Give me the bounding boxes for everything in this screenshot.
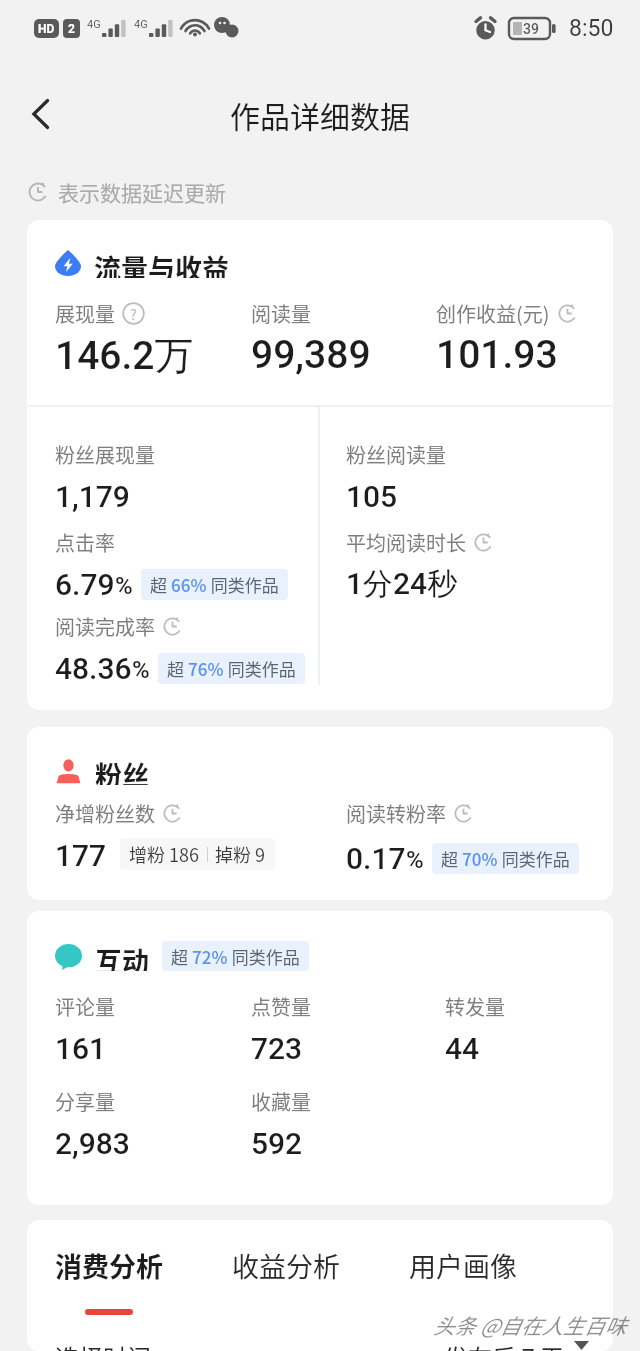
staticText: 点击率 <box>55 528 115 557</box>
staticText: 粉丝展现量 <box>55 440 155 469</box>
button[interactable]: 发布后 7 天 <box>444 1339 589 1351</box>
staticText: 表示数据延迟更新 <box>58 177 226 207</box>
staticText: 同类作品 <box>224 656 296 681</box>
staticText: 头条 @自在人生百味 <box>433 1310 626 1340</box>
staticText: 选择时间 <box>55 1339 151 1351</box>
staticText: 8:50 <box>569 15 614 42</box>
staticText: 超 <box>167 656 188 681</box>
staticText: 掉粉 9 <box>215 841 266 867</box>
staticText: 4G <box>87 18 101 31</box>
staticText: 39 <box>523 21 539 37</box>
button[interactable]: 收益分析 <box>232 1246 340 1285</box>
staticText: 阅读转粉率 <box>346 799 446 828</box>
staticText: 阅读完成率 <box>55 612 155 641</box>
staticText: 同类作品 <box>207 572 279 597</box>
staticText: 同类作品 <box>228 944 300 968</box>
staticText: 70% <box>462 846 498 871</box>
staticText: 收益分析 <box>232 1246 340 1285</box>
staticText: 平均阅读时长 <box>346 528 466 557</box>
staticText: % <box>406 846 424 874</box>
staticText: 超 <box>441 846 462 871</box>
button[interactable]: Back <box>12 85 70 143</box>
staticText: 转发量 <box>445 992 505 1021</box>
staticText: ? <box>130 303 137 324</box>
staticText: 2 <box>68 22 75 36</box>
staticText: 超 <box>150 572 171 597</box>
staticText: 592 <box>251 1126 303 1161</box>
staticText: 超 <box>171 944 192 968</box>
staticText: 105 <box>346 479 398 514</box>
button[interactable]: 用户画像 <box>409 1246 517 1285</box>
staticText: 76% <box>188 656 224 681</box>
staticText: % <box>132 656 150 684</box>
staticText: 4G <box>134 18 148 31</box>
staticText: HD <box>38 22 55 36</box>
staticText: 101.93 <box>436 332 558 378</box>
button[interactable]: 消费分析 <box>55 1246 163 1315</box>
staticText: 流量与收益 <box>94 248 229 278</box>
staticText: 作品详细数据 <box>230 93 410 136</box>
staticText: 评论量 <box>55 992 115 1021</box>
staticText: 互动 <box>95 941 149 971</box>
staticText: 2,983 <box>55 1126 130 1161</box>
staticText: 66% <box>171 572 207 597</box>
staticText: 1分24秒 <box>346 565 458 603</box>
staticText: 177 <box>55 838 107 873</box>
staticText: 1,179 <box>55 479 130 514</box>
staticText: 粉丝 <box>95 755 149 785</box>
staticText: 粉丝阅读量 <box>346 440 446 469</box>
staticText: 6.79 <box>55 567 115 602</box>
staticText: 44 <box>445 1031 480 1066</box>
staticText: 161 <box>55 1031 107 1066</box>
staticText: 99,389 <box>251 332 371 378</box>
staticText: 消费分析 <box>55 1246 163 1285</box>
staticText: 72% <box>192 944 228 968</box>
staticText: 增粉 186 <box>129 841 200 867</box>
staticText: 分享量 <box>55 1087 115 1116</box>
staticText: 阅读量 <box>251 299 311 328</box>
staticText: 发布后 7 天 <box>444 1339 565 1351</box>
staticText: % <box>115 572 133 600</box>
staticText: 723 <box>251 1031 303 1066</box>
staticText: 创作收益(元) <box>436 299 550 328</box>
staticText: 展现量 <box>55 299 115 328</box>
staticText: 146.2万 <box>55 331 194 380</box>
staticText: 0.17 <box>346 841 406 876</box>
staticText: 同类作品 <box>498 846 570 871</box>
staticText: 用户画像 <box>409 1246 517 1285</box>
staticText: 48.36 <box>55 651 132 686</box>
staticText: 收藏量 <box>251 1087 311 1116</box>
staticText: 点赞量 <box>251 992 311 1021</box>
staticText: 净增粉丝数 <box>55 799 155 828</box>
